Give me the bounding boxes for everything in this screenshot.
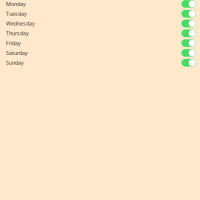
button[interactable]: Wednesday [0,19,200,28]
button[interactable]: Sunday [0,58,200,68]
button[interactable]: Tuesday [0,9,200,19]
staticText: Sunday [6,59,24,66]
staticText: Wednesday [6,20,35,27]
staticText: Thursday [6,30,29,37]
button[interactable]: Saturday [0,48,200,58]
button[interactable]: Thursday [0,28,200,38]
staticText: Saturday [6,49,28,56]
staticText: Friday [6,40,21,47]
staticText: Tuesday [6,10,27,17]
button[interactable]: Monday [0,0,200,9]
button[interactable]: Friday [0,38,200,48]
staticText: Monday [6,0,26,7]
